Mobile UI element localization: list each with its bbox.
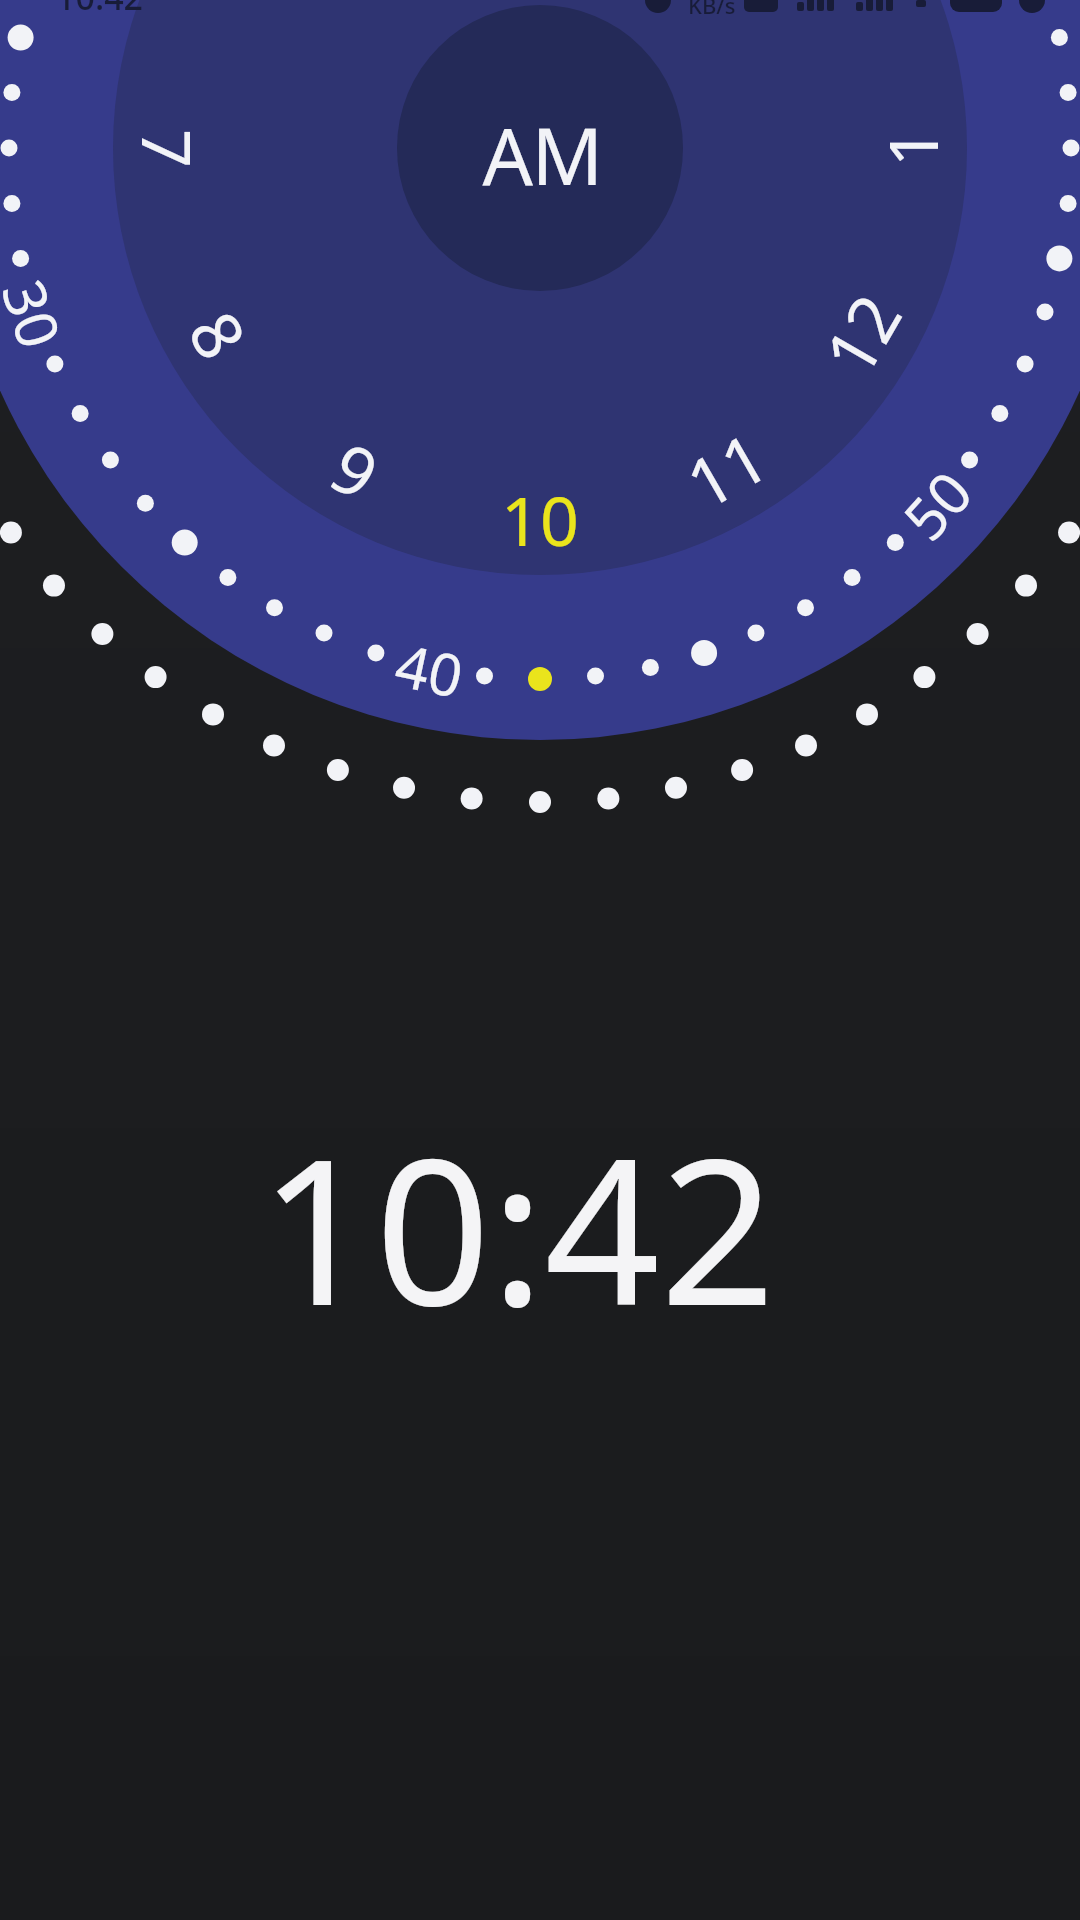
staticText: 7 xyxy=(122,129,215,168)
staticText: 40 xyxy=(388,624,470,715)
button[interactable]: 10:42 xyxy=(0,1089,1057,1329)
staticText: 11 xyxy=(669,410,783,529)
staticText: 30 xyxy=(0,270,81,358)
staticText: 10 xyxy=(501,473,579,566)
staticText: 50 xyxy=(885,454,988,556)
staticText: KB/s xyxy=(688,0,736,20)
staticText: 1 xyxy=(865,128,958,167)
staticText: AM xyxy=(482,101,602,209)
staticText: 10:42 xyxy=(56,0,144,20)
staticText: 0 xyxy=(1005,0,1080,11)
staticText: 9 xyxy=(315,420,395,520)
staticText: 12 xyxy=(802,277,921,391)
staticText: 10:42 xyxy=(259,1089,776,1329)
staticText: 8 xyxy=(169,294,269,375)
staticText: 2 xyxy=(811,0,911,2)
button[interactable]: AM xyxy=(397,5,683,291)
